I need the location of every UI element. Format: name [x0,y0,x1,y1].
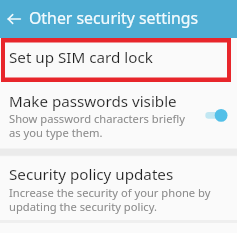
staticText: Increase the security of your phone by u… [9,185,211,214]
button[interactable]: Make passwords visible, on [200,103,232,127]
staticText: Other security settings [29,7,199,29]
button[interactable]: Make passwords visible [0,83,237,149]
staticText: Set up SIM card lock [9,47,153,68]
button[interactable]: Security policy updates [0,156,237,220]
button[interactable]: Set up SIM card lock [1,38,231,82]
button[interactable]: Navigate up [1,6,27,32]
staticText: Show password characters briefly as you … [9,111,185,140]
staticText: Make passwords visible [9,91,177,112]
staticText: Security policy updates [9,164,174,185]
